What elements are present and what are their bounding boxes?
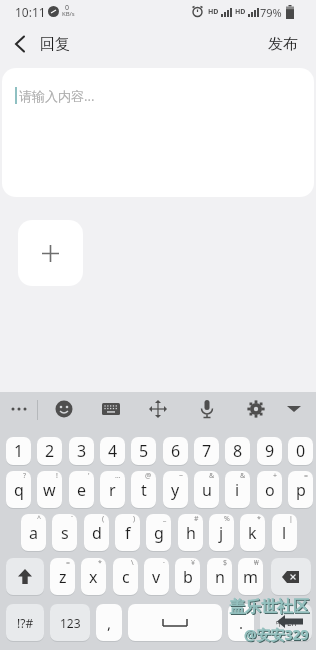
staticText: 5 — [139, 440, 149, 462]
button[interactable]: v — [144, 558, 169, 595]
button[interactable] — [6, 30, 34, 58]
staticText: ₩ — [254, 558, 259, 568]
button[interactable]: 9 — [257, 437, 282, 465]
staticText: d — [92, 522, 102, 544]
button[interactable]: b — [175, 558, 200, 595]
button[interactable]: t — [131, 471, 156, 508]
button[interactable]: 8 — [225, 437, 250, 465]
button[interactable]: p — [288, 471, 313, 508]
button[interactable] — [242, 395, 270, 423]
staticText: ' — [88, 471, 90, 481]
staticText: + — [273, 471, 278, 481]
staticText: 10:11 — [15, 4, 46, 20]
staticText: v — [152, 566, 161, 588]
staticText: t — [141, 479, 147, 501]
staticText: ^ — [37, 514, 42, 524]
button[interactable]: 123 — [50, 604, 90, 641]
button[interactable]: y — [163, 471, 188, 508]
button[interactable]: 3 — [69, 437, 94, 465]
staticText: HD — [208, 7, 219, 17]
staticText: q — [14, 479, 24, 501]
staticText: # — [194, 514, 199, 524]
staticText: 0 — [296, 440, 306, 462]
staticText: = — [304, 471, 309, 481]
button[interactable]: k — [240, 514, 265, 551]
button[interactable] — [144, 395, 172, 423]
staticText: u — [202, 479, 212, 501]
button[interactable]: 2 — [37, 437, 62, 465]
button[interactable]: j — [209, 514, 234, 551]
staticText: j — [219, 522, 224, 544]
staticText: o — [265, 479, 275, 501]
button[interactable] — [50, 395, 78, 423]
staticText: 1 — [14, 440, 24, 462]
button[interactable]: 1 — [6, 437, 31, 465]
button[interactable]: g — [146, 514, 171, 551]
staticText: 请输入内容... — [19, 87, 95, 105]
button[interactable] — [193, 395, 221, 423]
staticText: f — [125, 522, 131, 544]
button[interactable]: w — [37, 471, 62, 508]
staticText: ? — [23, 471, 27, 481]
button[interactable]: 请输入内容... — [2, 68, 314, 197]
staticText: 6 — [171, 440, 181, 462]
button[interactable] — [5, 395, 33, 423]
staticText: e — [77, 479, 87, 501]
button[interactable]: l — [272, 514, 297, 551]
staticText: KB/s — [62, 10, 75, 18]
button[interactable]: z — [50, 558, 75, 595]
staticText: 123 — [60, 615, 81, 631]
staticText: h — [186, 522, 196, 544]
button[interactable]: x — [81, 558, 106, 595]
button[interactable] — [97, 395, 125, 423]
staticText: = — [66, 558, 71, 568]
staticText: 2 — [45, 440, 55, 462]
button[interactable]: 0 — [288, 437, 313, 465]
button[interactable]: r — [100, 471, 125, 508]
button[interactable] — [280, 395, 308, 423]
button[interactable]: 发布 — [260, 30, 306, 58]
button[interactable]: s — [52, 514, 77, 551]
staticText: a — [29, 522, 38, 544]
button[interactable]: m — [238, 558, 263, 595]
staticText: 8 — [233, 440, 243, 462]
button[interactable]: n — [207, 558, 232, 595]
staticText: b — [183, 566, 193, 588]
button[interactable]: e — [69, 471, 94, 508]
button[interactable]: . — [228, 604, 254, 641]
button[interactable]: h — [178, 514, 203, 551]
staticText: !?# — [17, 615, 34, 631]
button[interactable] — [128, 604, 222, 641]
staticText: & — [240, 471, 246, 481]
staticText: 发布 — [268, 35, 298, 54]
button[interactable]: u — [194, 471, 219, 508]
button[interactable]: 中/En — [260, 604, 312, 641]
button[interactable]: 6 — [163, 437, 188, 465]
staticText: 7 — [202, 440, 212, 462]
button[interactable] — [271, 558, 311, 595]
staticText: w — [43, 479, 56, 501]
staticText: @安安329 — [244, 625, 309, 643]
button[interactable]: a — [21, 514, 46, 551]
button[interactable]: i — [225, 471, 250, 508]
button[interactable]: f — [115, 514, 140, 551]
staticText: @ — [145, 471, 152, 481]
button[interactable]: 4 — [100, 437, 125, 465]
staticText: $ — [223, 558, 228, 568]
button[interactable]: o — [257, 471, 282, 508]
button[interactable]: c — [113, 558, 138, 595]
button[interactable]: 5 — [131, 437, 156, 465]
staticText: ( — [102, 514, 105, 524]
button[interactable]: 7 — [194, 437, 219, 465]
staticText: ` — [71, 514, 73, 524]
button[interactable]: q — [6, 471, 31, 508]
staticText: . — [239, 613, 244, 633]
button[interactable]: d — [84, 514, 109, 551]
staticText: l — [282, 522, 287, 544]
staticText: y — [171, 479, 180, 501]
button[interactable]: !?# — [6, 604, 44, 641]
button[interactable] — [6, 558, 44, 595]
button[interactable]: , — [96, 604, 122, 641]
staticText: ~ — [179, 471, 184, 481]
button[interactable] — [18, 220, 83, 286]
